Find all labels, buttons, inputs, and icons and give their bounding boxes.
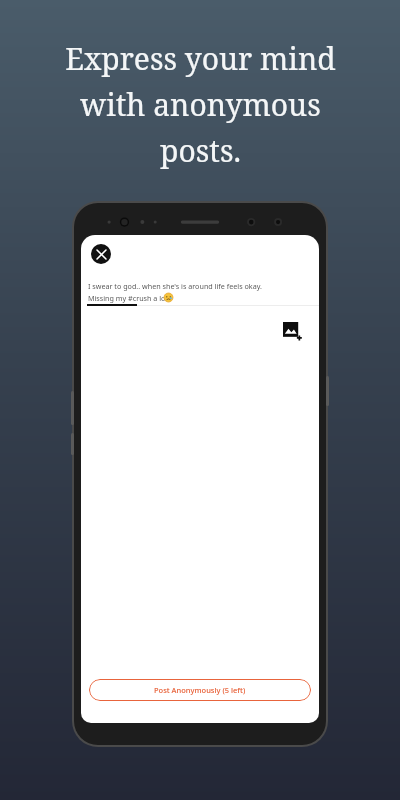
- staticText: posts.: [160, 130, 241, 171]
- button[interactable]: Add photo: [281, 320, 303, 342]
- staticText: I swear to god.. when she's is around li…: [88, 281, 262, 291]
- staticText: with anonymous: [80, 84, 321, 125]
- staticText: Missing my #crush a lot.: [88, 293, 174, 303]
- button[interactable]: Post Anonymously (5 left): [89, 679, 311, 701]
- staticText: Post Anonymously (5 left): [154, 685, 246, 695]
- button[interactable]: Close: [91, 244, 111, 264]
- staticText: Express your mind: [65, 38, 336, 79]
